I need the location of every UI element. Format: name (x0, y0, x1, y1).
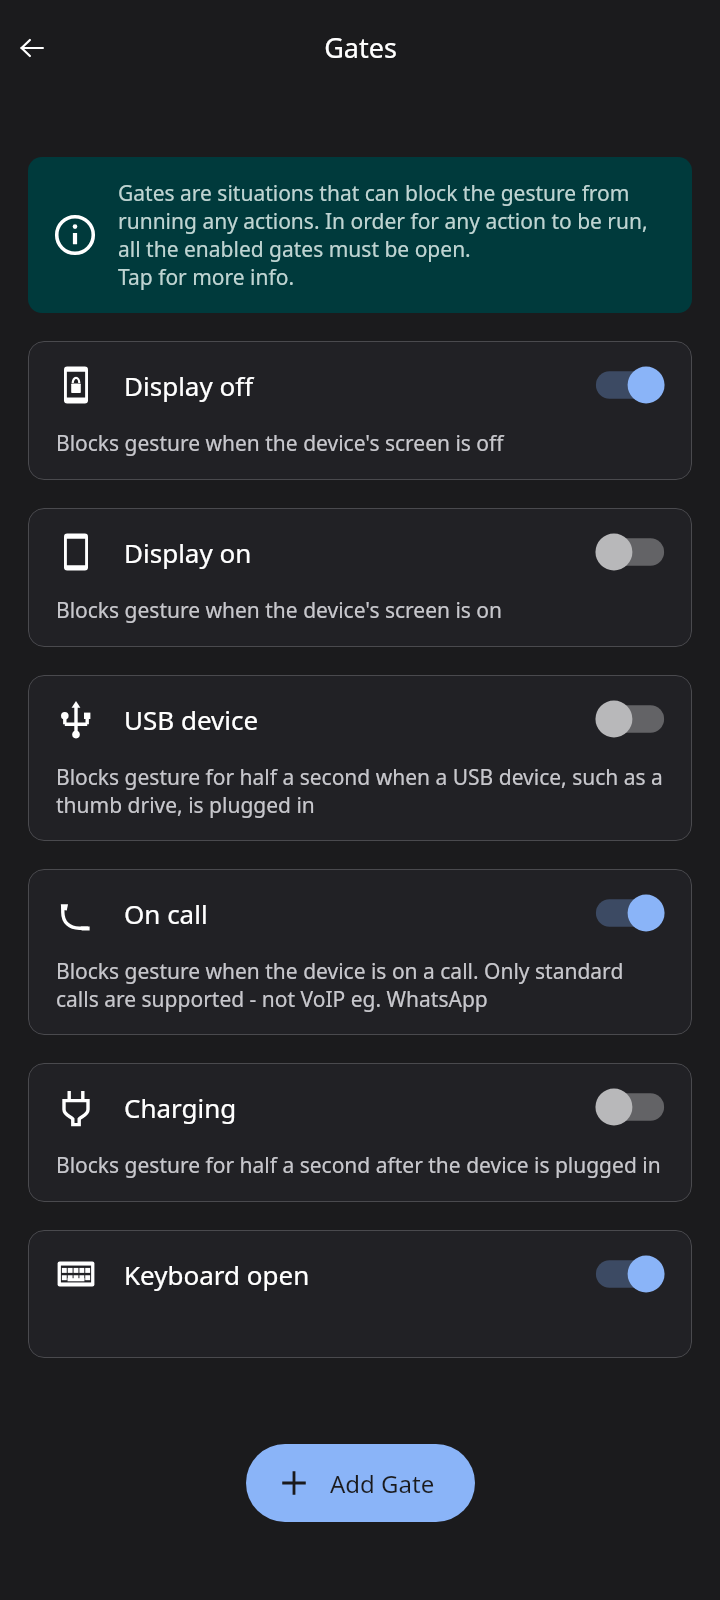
staticText: Blocks gesture for half a second when a … (56, 763, 666, 819)
button[interactable]: Add Gate (246, 1444, 475, 1522)
button[interactable]: Display off (28, 341, 692, 480)
staticText: Display off (124, 368, 254, 403)
button[interactable]: Keyboard open (28, 1230, 692, 1358)
button[interactable]: Back (8, 24, 56, 72)
staticText: USB device (124, 702, 259, 737)
staticText: Gates are situations that can block the … (118, 179, 670, 291)
button[interactable]: On (594, 891, 666, 935)
button[interactable]: On (594, 1252, 666, 1296)
staticText: Add Gate (330, 1467, 435, 1500)
button[interactable]: Display on (28, 508, 692, 647)
staticText: Blocks gesture when the device is on a c… (56, 957, 666, 1013)
staticText: Blocks gesture for half a second after t… (56, 1151, 661, 1180)
button[interactable]: On (594, 363, 666, 407)
button[interactable]: Charging (28, 1063, 692, 1202)
button[interactable]: Off (594, 697, 666, 741)
staticText: Keyboard open (124, 1257, 310, 1292)
button[interactable]: USB device (28, 675, 692, 841)
button[interactable]: On call (28, 869, 692, 1035)
staticText: Display on (124, 535, 252, 570)
button[interactable]: Off (594, 1085, 666, 1129)
button[interactable]: Gates are situations that can block the … (28, 157, 692, 313)
staticText: Charging (124, 1090, 237, 1125)
staticText: Blocks gesture when the device's screen … (56, 429, 504, 458)
button[interactable]: Off (594, 530, 666, 574)
staticText: Gates (324, 29, 397, 66)
staticText: Blocks gesture when the device's screen … (56, 596, 503, 625)
staticText: On call (124, 896, 208, 931)
